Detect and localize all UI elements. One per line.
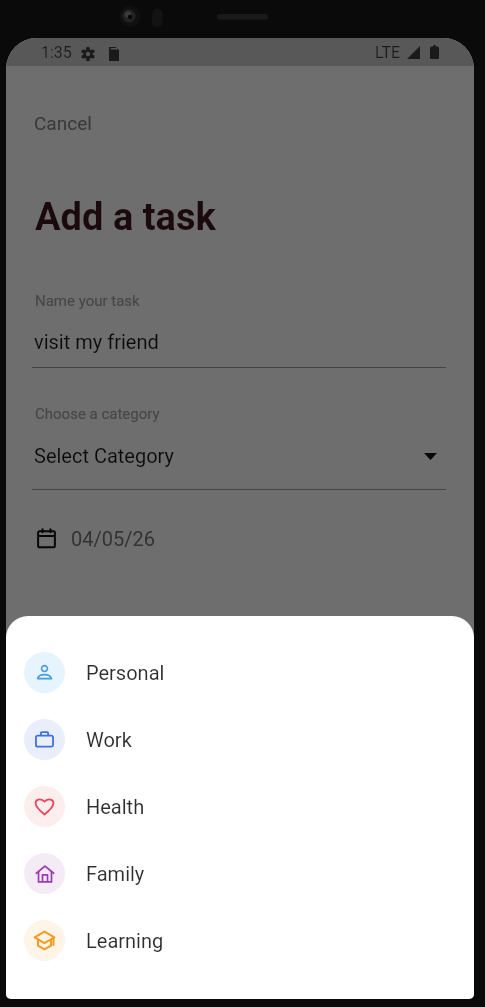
staticText: Select Category	[34, 444, 175, 467]
button[interactable]: Health	[6, 773, 474, 840]
staticText: Add a task	[35, 195, 216, 240]
staticText: visit my friend	[34, 330, 159, 353]
staticText: Health	[86, 795, 145, 818]
staticText: Family	[86, 862, 145, 885]
other: Open category list	[424, 453, 437, 460]
button[interactable]: Family	[6, 840, 474, 907]
staticText: Name your task	[35, 292, 140, 310]
staticText: Work	[86, 728, 132, 751]
button[interactable]: 04/05/26	[30, 524, 165, 553]
button[interactable]	[32, 323, 446, 369]
button[interactable]: Personal	[6, 639, 474, 706]
staticText: Learning	[86, 929, 164, 952]
button[interactable]: Work	[6, 706, 474, 773]
button[interactable]: Cancel	[34, 112, 92, 134]
staticText: 1:35	[41, 43, 72, 62]
staticText: 04/05/26	[71, 527, 155, 550]
staticText: Personal	[86, 661, 165, 684]
staticText: Choose a category	[35, 405, 160, 423]
other: Settings	[81, 47, 95, 61]
button[interactable]: Learning	[6, 907, 474, 974]
staticText: LTE	[375, 43, 401, 62]
